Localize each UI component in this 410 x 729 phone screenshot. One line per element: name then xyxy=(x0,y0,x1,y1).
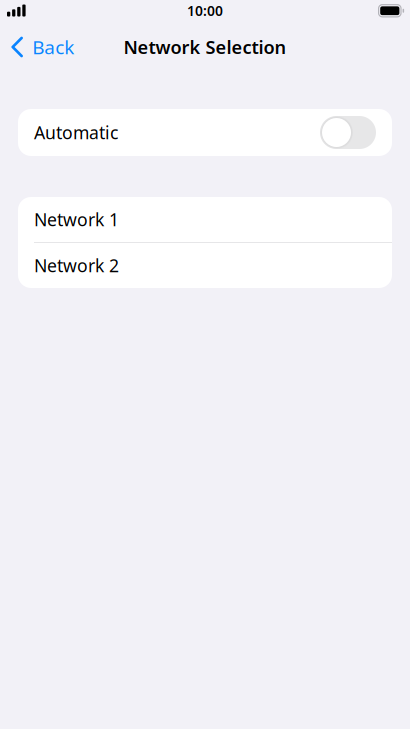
staticText: Network 2 xyxy=(34,253,119,277)
staticText: Back xyxy=(32,34,74,60)
button[interactable]: Automatic xyxy=(18,109,392,156)
staticText: Network Selection xyxy=(123,35,286,59)
button[interactable]: Back xyxy=(0,25,82,69)
staticText: Network 1 xyxy=(34,207,119,231)
staticText: Automatic xyxy=(34,120,118,144)
button[interactable]: Network 2 xyxy=(18,243,392,288)
button[interactable]: Network 1 xyxy=(18,197,392,242)
staticText: 10:00 xyxy=(187,1,223,20)
